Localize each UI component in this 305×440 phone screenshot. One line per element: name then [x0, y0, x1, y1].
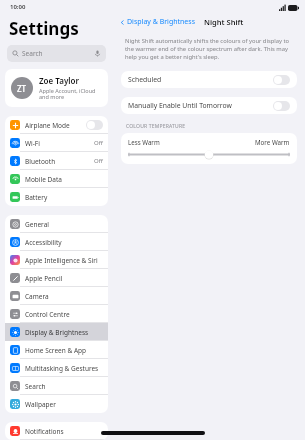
staticText: Bluetooth	[25, 157, 56, 166]
button[interactable]: Toggle	[86, 120, 103, 130]
staticText: More Warm	[255, 138, 290, 146]
staticText: Off	[94, 157, 103, 165]
staticText: Apple Intelligence & Siri	[25, 256, 98, 265]
staticText: Search	[22, 49, 43, 58]
staticText: Control Centre	[25, 310, 70, 319]
button[interactable]: Search	[5, 377, 108, 395]
staticText: Zoe Taylor	[39, 75, 79, 86]
staticText: Wallpaper	[25, 400, 56, 409]
staticText: ZT	[17, 83, 27, 94]
staticText: 10:00	[10, 3, 26, 11]
staticText: Apple Pencil	[25, 274, 63, 283]
staticText: Search	[25, 382, 46, 391]
staticText: Manually Enable Until Tomorrow	[128, 101, 232, 110]
staticText: Airplane Mode	[25, 121, 70, 130]
button[interactable]: Apple Intelligence & Siri	[5, 251, 108, 269]
staticText: Camera	[25, 292, 49, 301]
staticText: Display & Brightness	[25, 328, 89, 337]
button[interactable]: Manually Enable Until Tomorrow	[121, 97, 297, 114]
staticText: Home Screen & App Library	[25, 346, 103, 355]
staticText: Scheduled	[128, 75, 162, 84]
button[interactable]: General	[5, 215, 108, 233]
button[interactable]: Multitasking & Gestures	[5, 359, 108, 377]
staticText: Battery	[25, 193, 48, 202]
button[interactable]: Wi-Fi	[5, 134, 108, 152]
staticText: Wi-Fi	[25, 139, 40, 148]
staticText: Settings	[9, 17, 79, 40]
button[interactable]: Control Centre	[5, 305, 108, 323]
staticText: COLOUR TEMPERATURE	[126, 123, 186, 130]
button[interactable]: Airplane Mode	[5, 116, 108, 134]
button[interactable]: Mobile Data	[5, 170, 108, 188]
button[interactable]: Display & Brightness	[5, 323, 108, 341]
button[interactable]: ZT	[5, 69, 108, 107]
button[interactable]: Bluetooth	[5, 152, 108, 170]
button[interactable]: Notifications	[5, 422, 108, 440]
staticText: Apple Account, iCloud and more	[39, 87, 96, 101]
button[interactable]: Battery	[5, 188, 108, 206]
staticText: General	[25, 220, 49, 229]
button[interactable]: Toggle	[273, 75, 290, 85]
staticText: Night Shift automatically shifts the col…	[125, 37, 293, 61]
staticText: Notifications	[25, 427, 64, 436]
button[interactable]: Camera	[5, 287, 108, 305]
button[interactable]: Colour temperature	[128, 150, 290, 159]
staticText: Display & Brightness	[127, 17, 196, 27]
staticText: Mobile Data	[25, 175, 62, 184]
button[interactable]: Apple Pencil	[5, 269, 108, 287]
button[interactable]: Toggle	[273, 101, 290, 111]
staticText: Accessibility	[25, 238, 62, 247]
button[interactable]: Accessibility	[5, 233, 108, 251]
staticText: Multitasking & Gestures	[25, 364, 99, 373]
staticText: Off	[94, 139, 103, 147]
staticText: Less Warm	[128, 138, 160, 146]
button[interactable]: Display & Brightness	[119, 15, 197, 29]
button[interactable]: Scheduled	[121, 71, 297, 88]
button[interactable]: Wallpaper	[5, 395, 108, 413]
button[interactable]: Home Screen & App Library	[5, 341, 108, 359]
button[interactable]: Search	[7, 45, 106, 62]
staticText: Night Shift	[204, 17, 244, 27]
